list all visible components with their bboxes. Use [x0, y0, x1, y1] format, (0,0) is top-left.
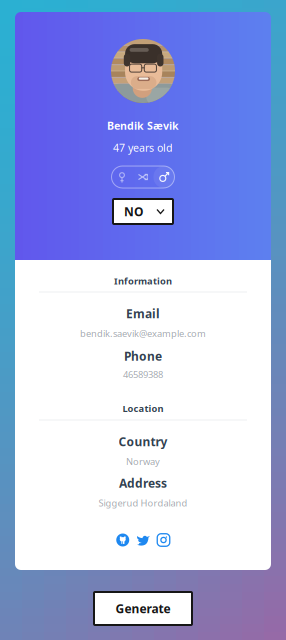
- button[interactable]: GitHub: [116, 533, 129, 546]
- button[interactable]: Instagram: [157, 534, 170, 546]
- button[interactable]: Male: [153, 166, 174, 188]
- staticText: Phone: [124, 348, 162, 364]
- staticText: NO: [124, 203, 143, 219]
- staticText: Bendik Sævik: [107, 118, 179, 133]
- staticText: Address: [119, 475, 167, 491]
- staticText: Norway: [126, 455, 160, 468]
- staticText: Location: [122, 402, 163, 415]
- button[interactable]: NO: [113, 199, 173, 224]
- staticText: Email: [126, 305, 160, 321]
- staticText: Generate: [115, 600, 170, 616]
- button[interactable]: Female: [111, 166, 132, 188]
- staticText: Siggerud Hordaland: [98, 497, 187, 509]
- staticText: bendik.saevik@example.com: [80, 327, 206, 340]
- button[interactable]: Twitter: [137, 533, 150, 546]
- staticText: 47 years old: [113, 140, 173, 155]
- staticText: Country: [118, 433, 167, 449]
- button[interactable]: Generate: [94, 592, 192, 625]
- button[interactable]: Random gender: [132, 166, 153, 188]
- staticText: Information: [114, 275, 172, 287]
- staticText: 46589388: [123, 368, 163, 381]
